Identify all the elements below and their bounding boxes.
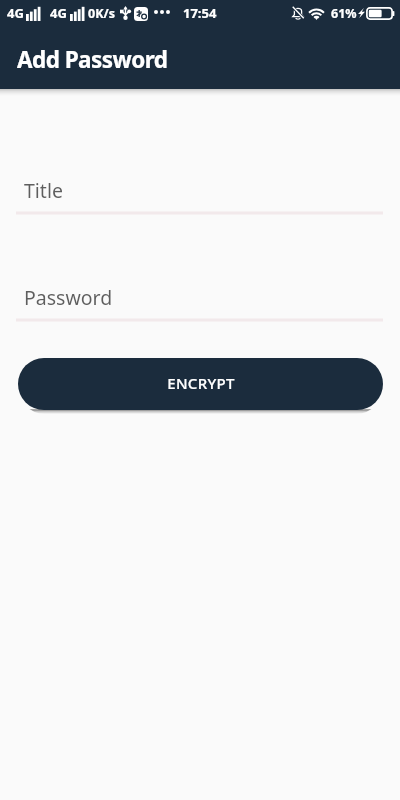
staticText: ENCRYPT — [167, 373, 235, 393]
other: Wi-Fi — [307, 7, 326, 20]
staticText: 0K/s — [88, 5, 115, 22]
other: Ringer silenced — [292, 6, 304, 20]
other: Charging — [358, 8, 365, 18]
staticText: Add Password — [17, 44, 168, 75]
other: App notification — [134, 7, 148, 21]
other: Battery 61 percent — [366, 7, 394, 20]
staticText: Title — [24, 177, 63, 204]
staticText: 4G — [50, 4, 67, 22]
button[interactable]: Password — [16, 284, 383, 322]
button[interactable]: ENCRYPT — [18, 358, 383, 410]
staticText: 4G — [7, 4, 24, 22]
staticText: 61% — [331, 5, 357, 22]
other: Mobile signal — [26, 6, 42, 21]
other: USB connected — [120, 6, 131, 20]
button[interactable]: Title — [16, 177, 383, 215]
staticText: 17:54 — [183, 4, 217, 22]
staticText: Password — [24, 284, 113, 311]
other: More notifications — [154, 10, 170, 14]
other: Mobile signal — [70, 6, 86, 21]
